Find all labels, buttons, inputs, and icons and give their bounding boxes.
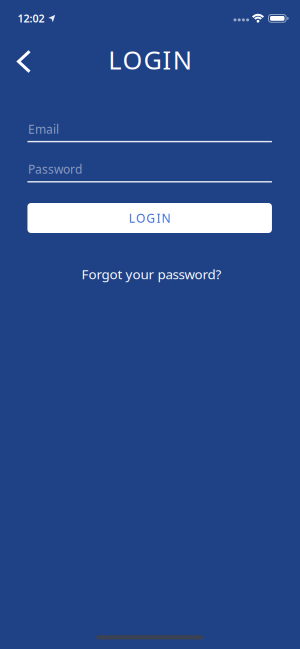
button[interactable]: Email xyxy=(0,120,300,150)
staticText: I xyxy=(156,210,160,226)
staticText: L xyxy=(108,43,121,76)
staticText: I xyxy=(163,43,172,76)
staticText: O xyxy=(122,43,142,76)
staticText: Email xyxy=(28,121,59,137)
staticText: N xyxy=(162,210,171,226)
staticText: 12:02 xyxy=(17,11,44,25)
button[interactable]: Password xyxy=(0,160,300,190)
staticText: O xyxy=(136,210,145,226)
button[interactable]: Forgot your password? xyxy=(81,262,221,286)
staticText: G xyxy=(143,43,161,76)
staticText: Password xyxy=(28,161,82,177)
staticText: L xyxy=(129,210,135,226)
staticText: G xyxy=(146,210,155,226)
staticText: Forgot your password? xyxy=(81,265,221,283)
staticText: N xyxy=(173,43,192,76)
button[interactable] xyxy=(7,41,41,81)
button[interactable]: L xyxy=(27,203,272,233)
